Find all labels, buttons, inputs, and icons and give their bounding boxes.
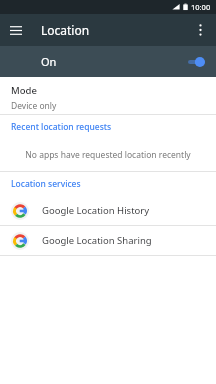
button[interactable]: On — [0, 46, 216, 77]
button[interactable]: More options — [184, 14, 216, 46]
button[interactable]: Mode — [0, 77, 216, 114]
staticText: Mode — [11, 84, 37, 97]
staticText: Device only — [11, 100, 57, 112]
staticText: Location services — [11, 178, 81, 190]
staticText: Location — [41, 22, 90, 38]
staticText: 10:00 — [191, 2, 211, 12]
staticText: Recent location requests — [11, 121, 112, 133]
staticText: Google Location Sharing — [42, 234, 152, 247]
staticText: Google Location History — [42, 204, 150, 217]
staticText: No apps have requested location recently — [25, 149, 191, 161]
staticText: On — [41, 54, 57, 69]
button[interactable]: Open navigation drawer — [0, 14, 32, 46]
button[interactable]: Google Location Sharing — [0, 226, 216, 255]
button[interactable]: Google Location History — [0, 196, 216, 225]
